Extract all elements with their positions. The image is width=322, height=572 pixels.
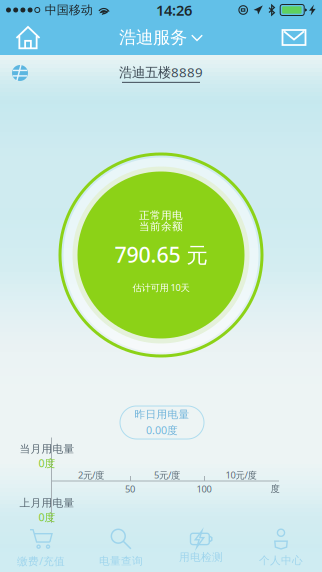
staticText: 14:26 — [156, 0, 192, 20]
staticText: 浩迪服务 — [119, 27, 187, 48]
staticText: 上月用电量 — [19, 496, 74, 509]
button[interactable]: 首页 — [2, 20, 54, 55]
staticText: 电量查询 — [99, 554, 143, 567]
button[interactable]: 昨日用电量 — [120, 406, 204, 439]
staticText: 0度 — [38, 456, 55, 470]
staticText: 100 — [196, 483, 211, 495]
staticText: 浩迪五楼8889 — [119, 63, 203, 81]
staticText: 当前余额 — [139, 220, 183, 233]
staticText: 0.00度 — [146, 423, 178, 437]
staticText: 缴费/充值 — [17, 554, 65, 568]
staticText: 10元/度 — [225, 469, 256, 481]
staticText: 50 — [125, 483, 135, 495]
staticText: 正常用电 — [139, 209, 183, 222]
staticText: 中国移动 — [45, 3, 93, 17]
button[interactable]: 缴费/充值 — [1, 524, 81, 572]
staticText: 个人中心 — [259, 554, 303, 567]
staticText: 0度 — [38, 510, 55, 524]
button[interactable]: 浩迪服务 — [119, 20, 203, 55]
staticText: 790.65 元 — [114, 240, 207, 269]
button[interactable]: 消息 — [268, 20, 320, 55]
button[interactable]: 个人中心 — [241, 524, 321, 572]
staticText: 5元/度 — [154, 469, 180, 481]
staticText: 昨日用电量 — [134, 408, 189, 421]
staticText: 2元/度 — [78, 469, 104, 481]
staticText: 当月用电量 — [19, 442, 74, 455]
staticText: 度 — [270, 483, 279, 495]
staticText: 用电检测 — [179, 551, 223, 564]
button[interactable]: 用电检测 — [161, 524, 241, 572]
staticText: 估计可用 10天 — [132, 281, 189, 294]
button[interactable]: 浩迪五楼8889 — [119, 63, 203, 83]
button[interactable]: 电量查询 — [81, 524, 161, 572]
